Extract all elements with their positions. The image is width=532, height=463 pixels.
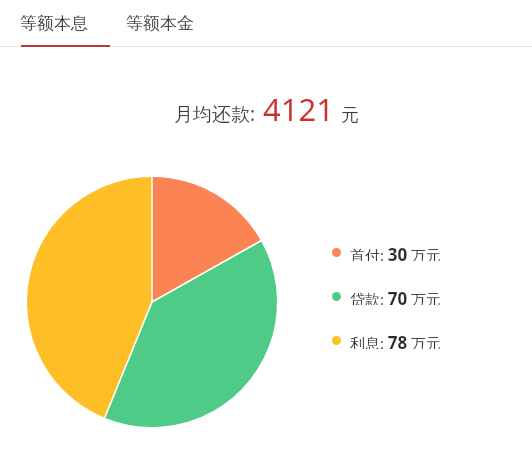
button[interactable]: 首付: 30 万元 xyxy=(332,243,441,261)
staticText: 首付: 30 万元 xyxy=(350,243,441,261)
button[interactable]: 等额本金 xyxy=(108,0,212,46)
staticText: 元 xyxy=(341,104,359,127)
button[interactable]: 贷款: 70 万元 xyxy=(332,287,441,305)
staticText: 利息: 78 万元 xyxy=(350,331,441,349)
staticText: 等额本金 xyxy=(126,13,194,34)
staticText: 贷款: 70 万元 xyxy=(350,287,441,305)
staticText: 等额本息 xyxy=(20,13,88,34)
button[interactable]: 等额本息 xyxy=(0,0,108,46)
staticText: 月均还款: xyxy=(174,101,256,127)
button[interactable]: 利息: 78 万元 xyxy=(332,331,441,349)
staticText: 4121 xyxy=(263,88,334,130)
